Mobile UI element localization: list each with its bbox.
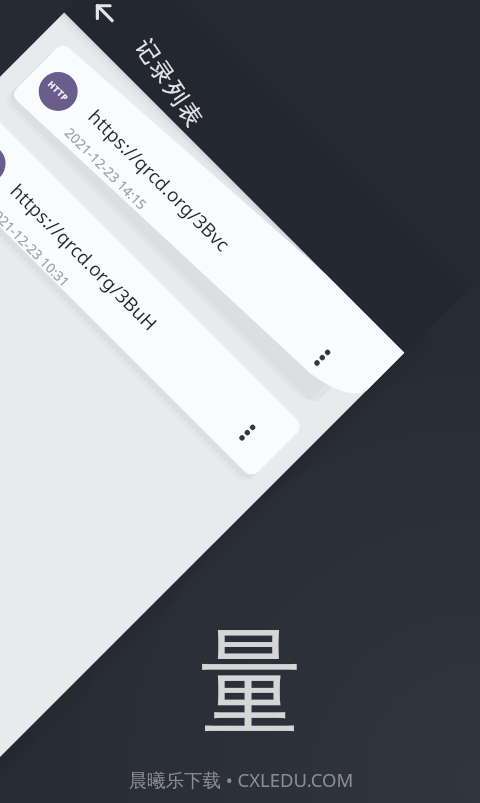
button[interactable] <box>95 2 119 26</box>
button[interactable] <box>0 116 305 478</box>
button[interactable] <box>0 0 480 803</box>
button[interactable] <box>0 44 400 374</box>
